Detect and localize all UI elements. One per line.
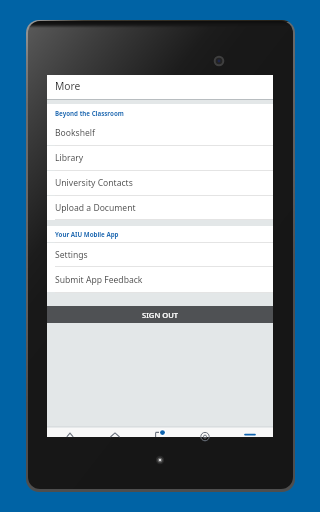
- button[interactable]: University Contacts: [47, 171, 273, 195]
- button[interactable]: More: [227, 428, 272, 437]
- button[interactable]: Home: [47, 428, 92, 437]
- button[interactable]: More: [47, 75, 273, 99]
- button[interactable]: Courses: [92, 428, 137, 437]
- staticText: Library: [55, 152, 84, 164]
- staticText: Settings: [55, 249, 88, 261]
- button[interactable]: Beyond the Classroom: [47, 104, 273, 121]
- button[interactable]: SIGN OUT: [47, 306, 273, 323]
- button[interactable]: Upload a Document: [47, 196, 273, 220]
- staticText: SIGN OUT: [142, 310, 179, 320]
- staticText: Upload a Document: [55, 202, 136, 214]
- button[interactable]: Calendar: [137, 428, 182, 437]
- button[interactable]: Grades: [182, 428, 227, 437]
- staticText: University Contacts: [55, 177, 133, 189]
- button[interactable]: Settings: [47, 243, 273, 267]
- staticText: More: [55, 79, 81, 93]
- button[interactable]: Library: [47, 146, 273, 170]
- staticText: Submit App Feedback: [55, 274, 143, 286]
- staticText: Beyond the Classroom: [55, 109, 124, 117]
- button[interactable]: Your AIU Mobile App: [47, 226, 273, 242]
- staticText: Bookshelf: [55, 127, 96, 139]
- button[interactable]: Bookshelf: [47, 121, 273, 145]
- button[interactable]: Submit App Feedback: [47, 267, 273, 292]
- staticText: Your AIU Mobile App: [55, 230, 119, 238]
